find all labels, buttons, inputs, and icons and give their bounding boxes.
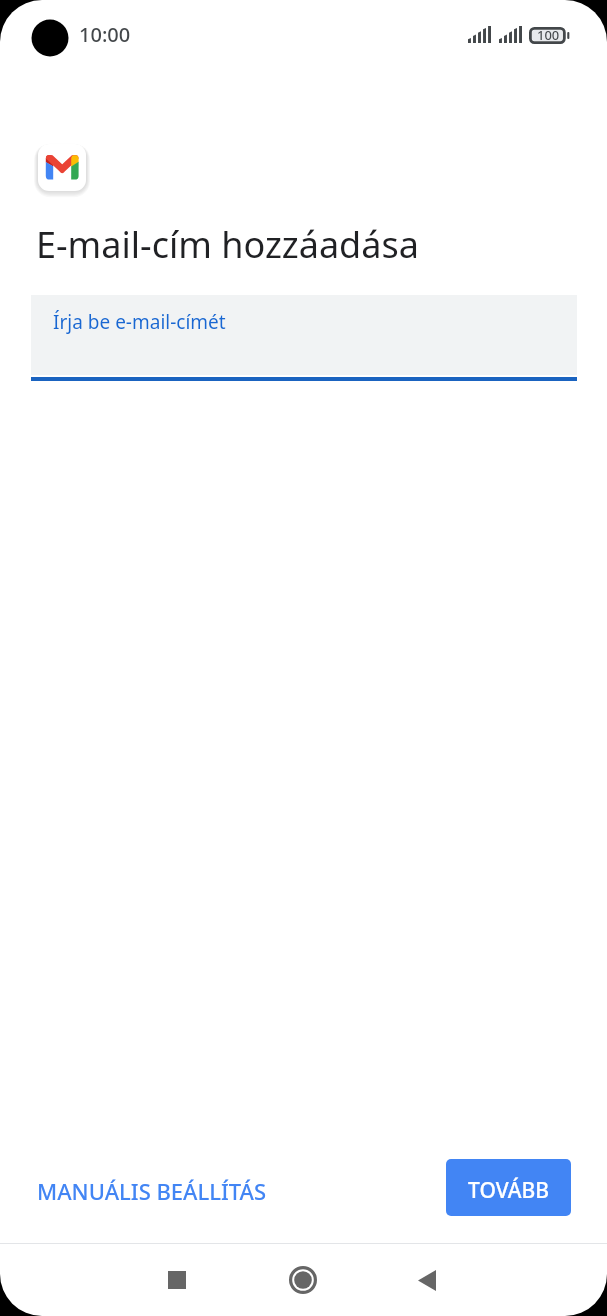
button[interactable]: TOVÁBB xyxy=(446,1159,571,1216)
staticText: TOVÁBB xyxy=(468,1176,549,1205)
button[interactable]: Home xyxy=(273,1250,333,1310)
button[interactable]: MANUÁLIS BEÁLLÍTÁS xyxy=(25,1168,279,1214)
staticText: 10:00 xyxy=(79,21,131,48)
staticText: E-mail-cím hozzáadása xyxy=(36,220,419,269)
staticText: 100 xyxy=(537,26,560,44)
button[interactable]: Back xyxy=(397,1250,457,1310)
button[interactable]: Recent apps xyxy=(147,1250,207,1310)
button[interactable]: Írja be e-mail-címét xyxy=(31,295,577,381)
staticText: Írja be e-mail-címét xyxy=(53,309,226,335)
staticText: MANUÁLIS BEÁLLÍTÁS xyxy=(37,1176,267,1206)
